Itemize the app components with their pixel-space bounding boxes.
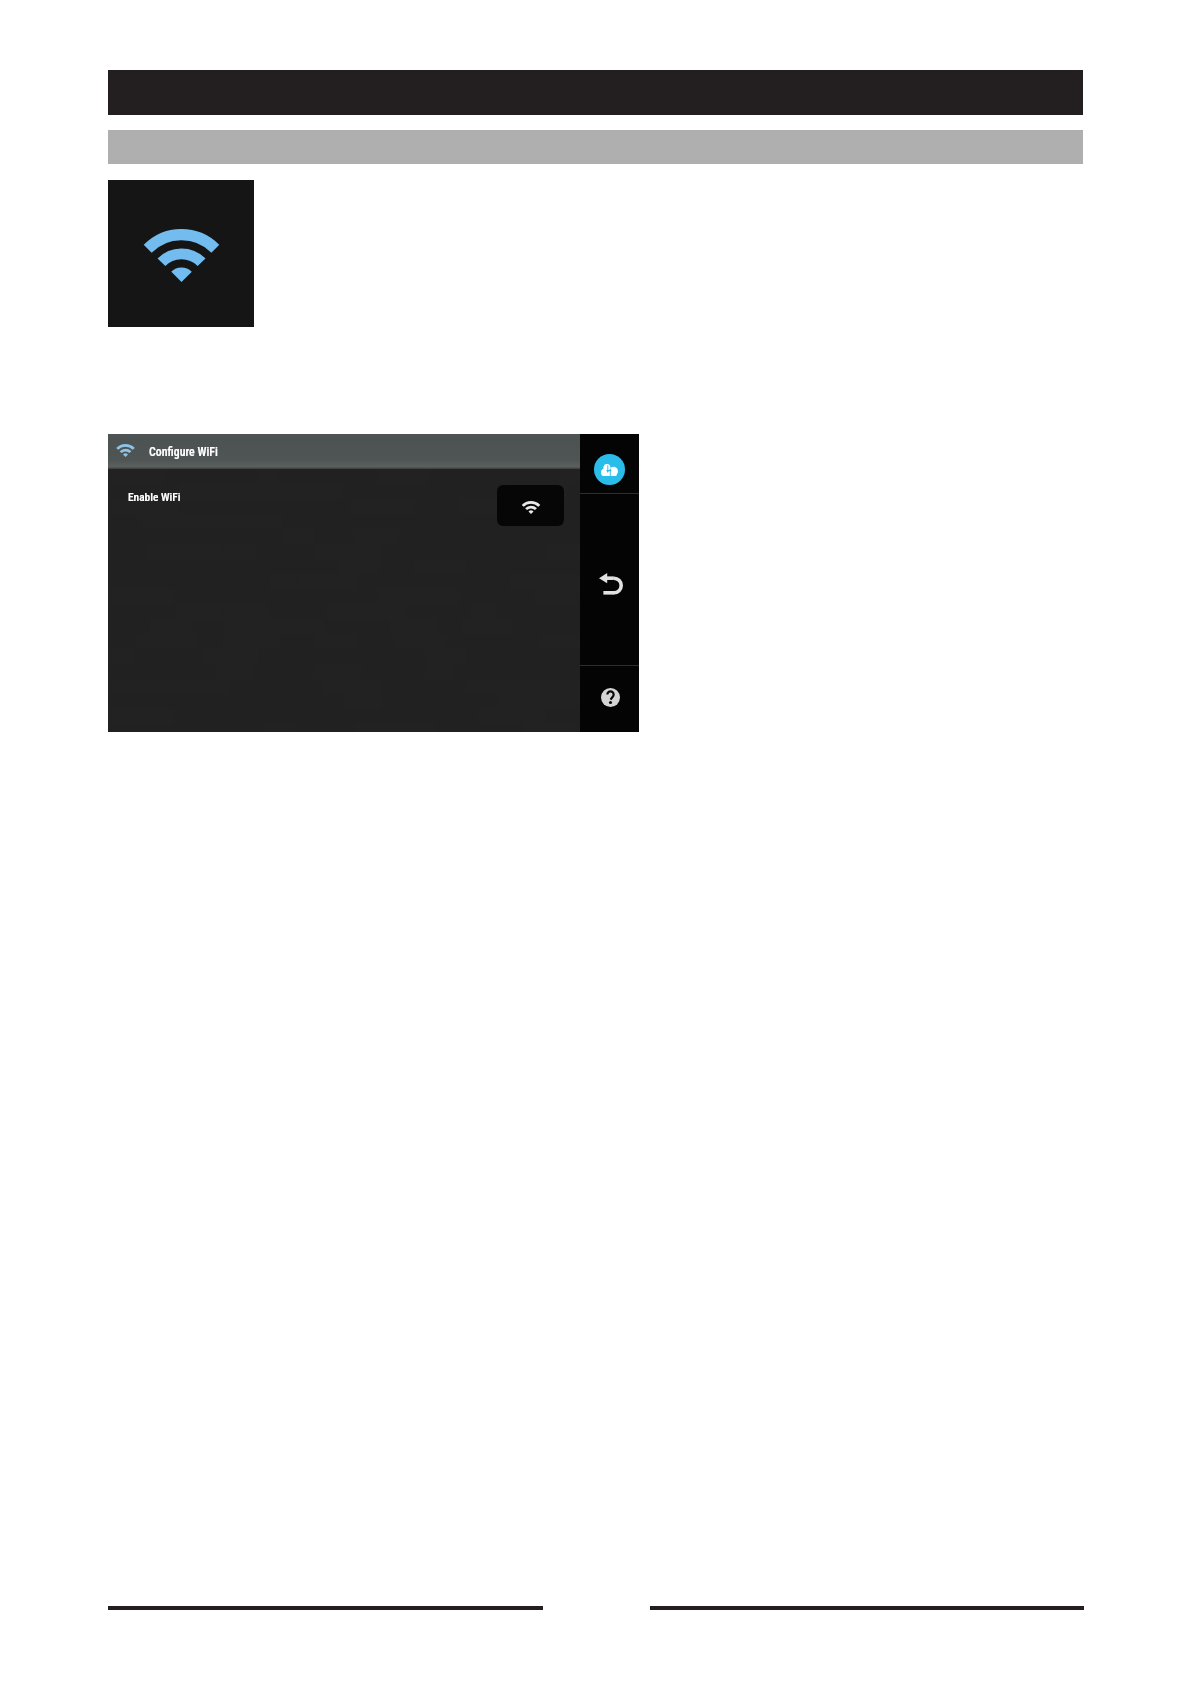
button[interactable]: Toggle WiFi — [497, 485, 564, 526]
button[interactable]: Help — [580, 666, 639, 732]
staticText: Configure WiFi — [149, 445, 218, 459]
button[interactable]: Back — [580, 494, 639, 665]
button[interactable]: Cloud sync — [580, 434, 639, 493]
staticText: Enable WiFi — [128, 490, 181, 503]
